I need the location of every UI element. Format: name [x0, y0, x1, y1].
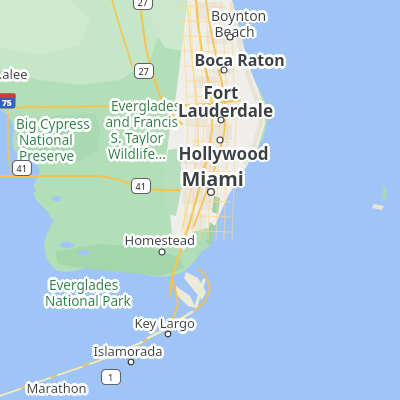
- button[interactable]: Map of South Florida: [0, 0, 400, 400]
